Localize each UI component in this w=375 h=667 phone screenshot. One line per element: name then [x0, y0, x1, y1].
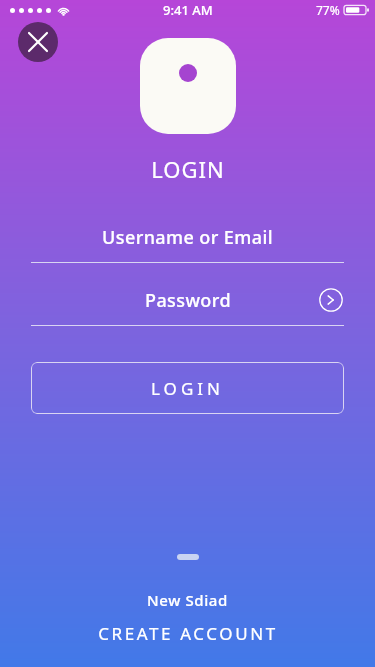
button[interactable]: Close — [18, 22, 58, 62]
staticText: New Sdiad — [147, 590, 228, 610]
button[interactable]: CREATE ACCOUNT — [74, 620, 302, 647]
staticText: Password — [145, 288, 231, 313]
staticText: LOGIN — [151, 154, 225, 184]
staticText: 9:41 AM — [163, 1, 213, 19]
button[interactable]: Password — [31, 283, 344, 326]
staticText: CREATE ACCOUNT — [98, 622, 278, 645]
button[interactable]: Submit — [318, 287, 344, 313]
button[interactable]: LOGIN — [31, 362, 344, 414]
staticText: LOGIN — [151, 377, 224, 400]
staticText: Username or Email — [102, 225, 273, 250]
staticText: 77% — [316, 2, 340, 18]
button[interactable]: Username or Email — [31, 220, 344, 263]
